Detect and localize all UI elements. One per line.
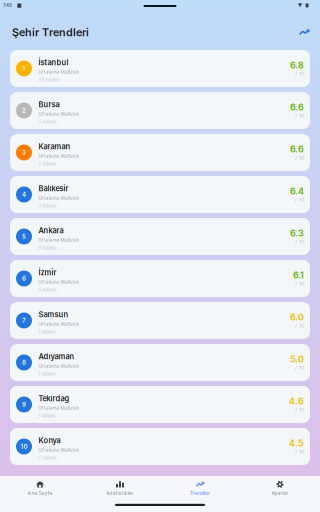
staticText: / 10 — [295, 113, 304, 119]
staticText: Ayarlar — [271, 490, 288, 496]
staticText: 8 — [22, 359, 26, 366]
staticText: 2 kullanıcı — [38, 161, 56, 166]
staticText: Trendler — [190, 490, 210, 496]
staticText: 38 kullanıcı — [38, 77, 59, 82]
staticText: Adıyaman — [38, 352, 74, 361]
staticText: 6.1 — [293, 270, 304, 281]
staticText: Ortalama Mutluluk — [38, 69, 78, 75]
staticText: Ortalama Mutluluk — [38, 321, 78, 327]
button[interactable]: 7 — [10, 302, 310, 339]
button[interactable]: Ana Sayfa — [0, 478, 80, 498]
staticText: 10 — [20, 443, 27, 450]
staticText: 7:49 — [3, 3, 12, 8]
staticText: 1 kullanıcı — [38, 329, 55, 334]
button[interactable]: Trendler — [160, 478, 240, 498]
staticText: 6.4 — [290, 186, 304, 197]
staticText: 3 — [22, 149, 26, 156]
staticText: Ortalama Mutluluk — [38, 279, 78, 285]
button[interactable]: 10 — [10, 428, 310, 465]
staticText: İstanbul — [38, 58, 68, 67]
staticText: Ortalama Mutluluk — [38, 153, 78, 159]
staticText: 2 — [22, 107, 26, 114]
staticText: / 10 — [295, 281, 304, 287]
staticText: Ankara — [38, 226, 63, 235]
staticText: / 10 — [295, 449, 304, 455]
staticText: 2 kullanıcı — [38, 455, 56, 460]
button[interactable]: 3 — [10, 134, 310, 171]
staticText: Samsun — [38, 310, 68, 319]
staticText: 5 — [22, 233, 26, 240]
button[interactable]: İstatistikler — [80, 478, 160, 498]
staticText: 3 kullanıcı — [38, 203, 56, 208]
staticText: Ortalama Mutluluk — [38, 447, 78, 453]
staticText: 4.6 — [289, 396, 304, 407]
staticText: 1 kullanıcı — [38, 413, 55, 418]
button[interactable]: 2 — [10, 92, 310, 129]
staticText: Ana Sayfa — [27, 490, 52, 496]
staticText: 6.6 — [290, 102, 304, 113]
staticText: 4.5 — [289, 438, 304, 449]
staticText: Konya — [38, 436, 60, 445]
staticText: 6.6 — [290, 144, 304, 155]
staticText: / 10 — [295, 365, 304, 371]
staticText: / 10 — [295, 239, 304, 245]
staticText: Şehir Trendleri — [12, 26, 89, 39]
button[interactable]: 5 — [10, 218, 310, 255]
staticText: Tekirdağ — [38, 394, 69, 403]
staticText: 1 — [22, 65, 25, 72]
staticText: / 10 — [295, 155, 304, 161]
button[interactable]: 1 — [10, 50, 310, 87]
button[interactable]: Ayarlar — [240, 478, 320, 498]
staticText: 6.3 — [290, 228, 304, 239]
staticText: 6 — [22, 275, 26, 282]
button[interactable]: 8 — [10, 344, 310, 381]
staticText: Karaman — [38, 142, 70, 151]
staticText: 6.8 — [290, 60, 304, 71]
staticText: Ortalama Mutluluk — [38, 405, 78, 411]
staticText: 8 kullanıcı — [38, 245, 56, 250]
staticText: 3 kullanıcı — [38, 119, 56, 124]
button[interactable]: 4 — [10, 176, 310, 213]
staticText: Ortalama Mutluluk — [38, 363, 78, 369]
staticText: Ortalama Mutluluk — [38, 111, 78, 117]
staticText: / 10 — [295, 407, 304, 413]
staticText: 1 kullanıcı — [38, 371, 55, 376]
staticText: İzmir — [38, 268, 56, 277]
staticText: 9 — [22, 401, 26, 408]
staticText: / 10 — [295, 197, 304, 203]
staticText: 4 — [22, 191, 26, 198]
button[interactable]: 6 — [10, 260, 310, 297]
staticText: 6.0 — [290, 312, 304, 323]
staticText: İstatistikler — [106, 490, 133, 496]
button[interactable]: Trendler — [295, 23, 313, 41]
button[interactable]: 9 — [10, 386, 310, 423]
staticText: Bursa — [38, 100, 59, 109]
staticText: / 10 — [295, 71, 304, 77]
staticText: Ortalama Mutluluk — [38, 237, 78, 243]
staticText: 7 — [22, 317, 26, 324]
staticText: Balıkesir — [38, 184, 68, 193]
staticText: 9 kullanıcı — [38, 287, 56, 292]
staticText: Ortalama Mutluluk — [38, 195, 78, 201]
staticText: / 10 — [295, 323, 304, 329]
staticText: 5.0 — [290, 354, 304, 365]
